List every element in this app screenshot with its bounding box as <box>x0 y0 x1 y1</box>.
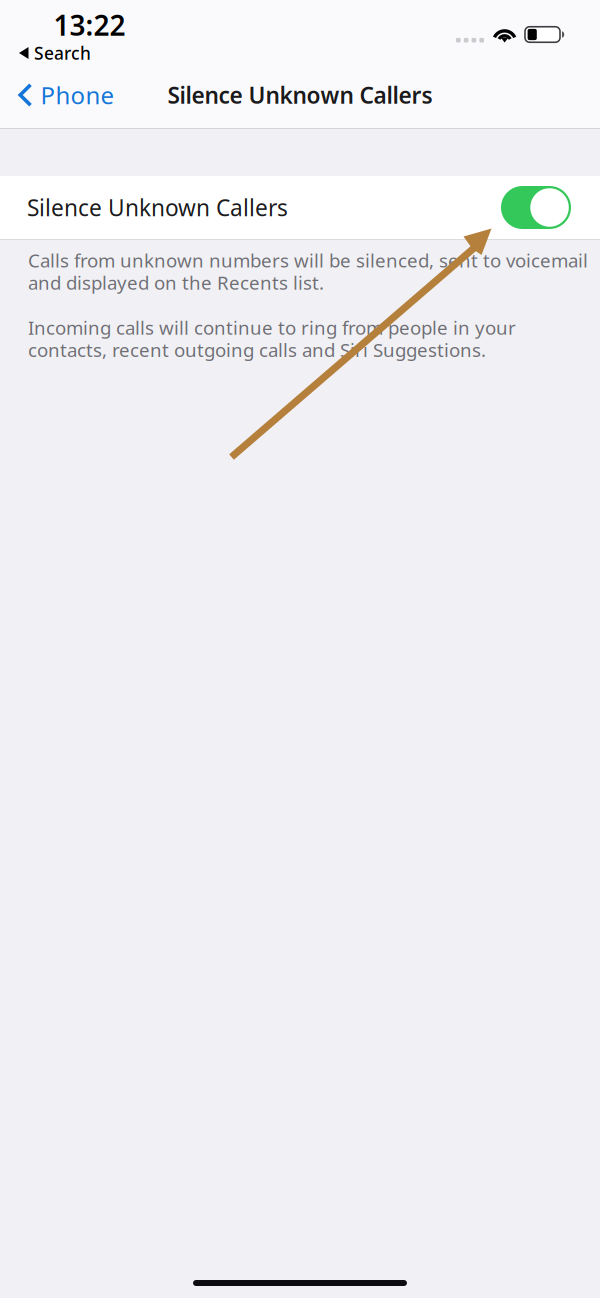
staticText: Calls from unknown numbers will be silen… <box>28 248 588 273</box>
button[interactable]: Search <box>0 44 600 62</box>
button[interactable]: Phone <box>0 71 128 119</box>
button[interactable]: Silence Unknown Callers <box>0 176 600 239</box>
staticText: Phone <box>40 79 114 111</box>
staticText: 13:22 <box>53 6 125 44</box>
staticText: Silence Unknown Callers <box>167 80 432 110</box>
staticText: Silence Unknown Callers <box>27 192 288 222</box>
staticText: contacts, recent outgoing calls and Siri… <box>28 337 486 362</box>
staticText: Incoming calls will continue to ring fro… <box>28 315 516 340</box>
staticText: Search <box>34 41 91 64</box>
staticText: and displayed on the Recents list. <box>28 270 324 295</box>
